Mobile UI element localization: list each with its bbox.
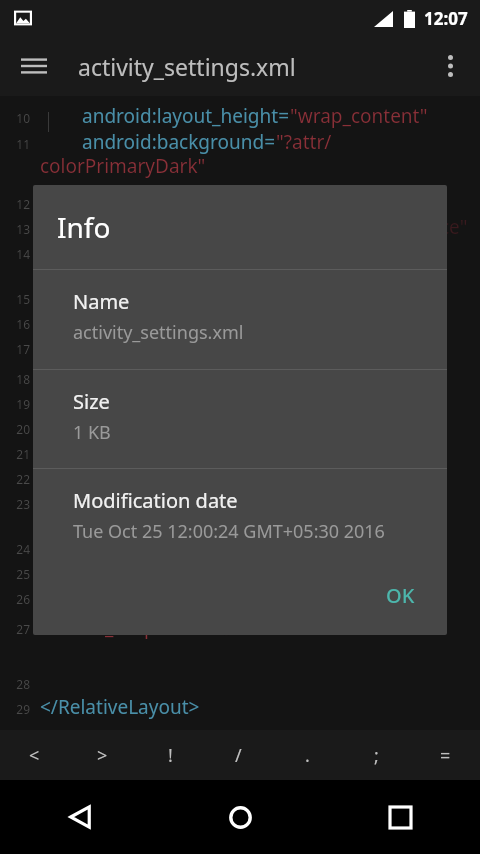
staticText: >	[97, 743, 108, 768]
staticText: 29	[16, 701, 30, 717]
staticText: 16	[16, 316, 30, 332]
staticText: "wrap_content"	[290, 103, 428, 129]
button[interactable]: =	[411, 730, 480, 780]
staticText: 10	[16, 110, 30, 126]
staticText: />	[234, 614, 257, 640]
staticText: 12	[16, 196, 30, 212]
button[interactable]: Home	[160, 780, 320, 854]
staticText: 22	[16, 471, 30, 487]
staticText: Info	[57, 208, 111, 246]
staticText: 11	[16, 136, 30, 152]
staticText: 1 KB	[73, 420, 111, 445]
staticText: ="@dimen/	[200, 614, 300, 640]
staticText: 13	[16, 221, 30, 237]
staticText: 27	[16, 621, 30, 637]
button[interactable]: !	[136, 730, 204, 780]
button[interactable]: ;	[342, 730, 411, 780]
staticText: 25	[16, 566, 30, 582]
staticText: 28	[16, 676, 30, 692]
button[interactable]: <	[0, 730, 68, 780]
staticText: 14	[16, 246, 30, 262]
staticText: </RelativeLayout>	[40, 694, 200, 720]
staticText: activity_settings.xml	[78, 51, 296, 82]
staticText: Size	[73, 388, 110, 415]
button[interactable]: Recent apps	[320, 780, 480, 854]
staticText: 24	[16, 541, 30, 557]
staticText: android:layout_height=	[82, 103, 290, 129]
button[interactable]: >	[68, 730, 136, 780]
staticText: /	[235, 743, 242, 768]
button[interactable]: Open navigation drawer	[10, 42, 58, 90]
staticText: .	[305, 743, 310, 768]
button[interactable]: Back	[0, 780, 160, 854]
staticText: 17	[16, 341, 30, 357]
staticText: !	[168, 743, 173, 768]
staticText: 12:07	[424, 7, 468, 30]
staticText: colorPrimaryDark"	[40, 153, 206, 179]
staticText: android:background=	[82, 129, 276, 155]
button[interactable]: .	[273, 730, 342, 780]
staticText: 21	[16, 446, 30, 462]
staticText: OK	[386, 582, 415, 609]
staticText: 18	[16, 371, 30, 387]
button[interactable]: /	[204, 730, 273, 780]
staticText: 15	[16, 291, 30, 307]
staticText: Name	[73, 288, 130, 315]
staticText: 20	[16, 421, 30, 437]
button[interactable]: More options	[426, 42, 474, 90]
button[interactable]: OK	[370, 574, 431, 617]
staticText: "?attr/	[276, 129, 332, 155]
staticText: 19	[16, 396, 30, 412]
staticText: toolbar_dropshadow"	[40, 614, 234, 640]
staticText: Modification date	[73, 487, 238, 514]
staticText: <	[29, 743, 40, 768]
staticText: activity_settings.xml	[73, 320, 244, 345]
staticText: 23	[16, 496, 30, 512]
staticText: ;	[374, 743, 379, 768]
staticText: 26	[16, 591, 30, 607]
staticText: ce"	[440, 214, 468, 240]
staticText: =	[440, 743, 451, 768]
staticText: Tue Oct 25 12:00:24 GMT+05:30 2016	[73, 519, 385, 544]
